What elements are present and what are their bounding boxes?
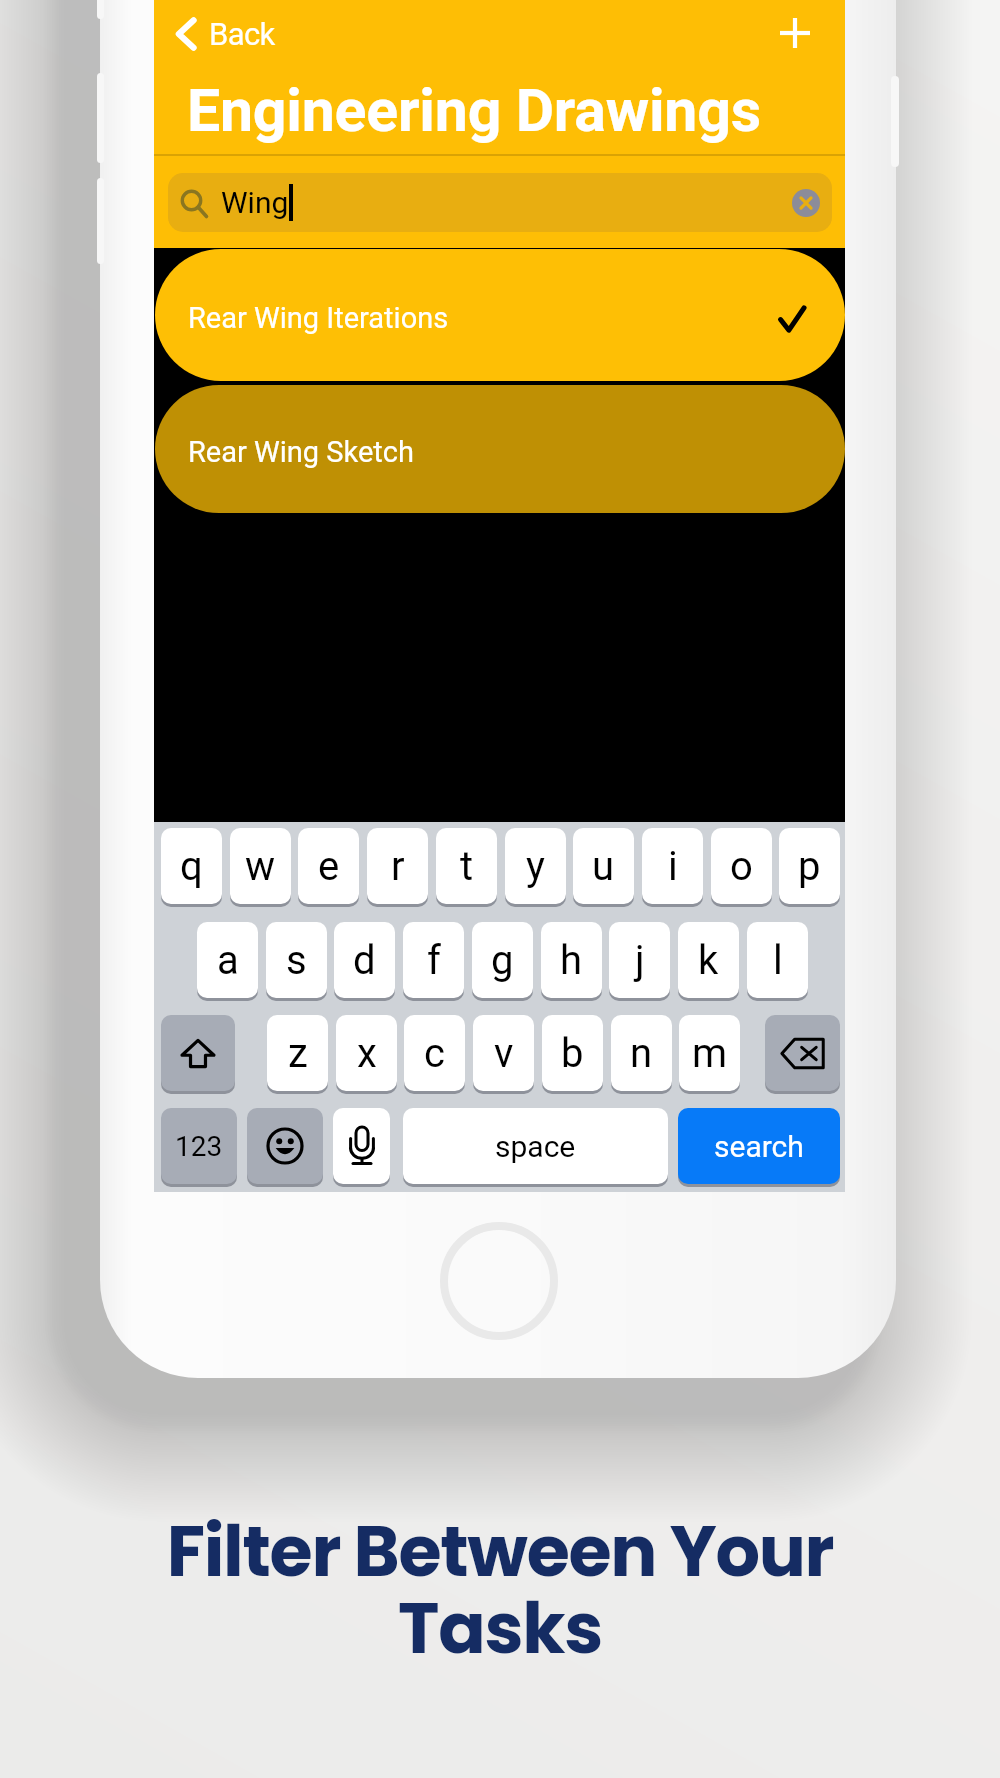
button[interactable]: Add (762, 0, 828, 66)
staticText: g (491, 937, 514, 984)
button[interactable]: m (679, 1015, 740, 1091)
staticText: space (495, 1129, 576, 1164)
button[interactable]: Wing (168, 173, 832, 232)
button[interactable]: x (336, 1015, 397, 1091)
staticText: Rear Wing Sketch (188, 435, 414, 469)
staticText: v (494, 1030, 514, 1077)
staticText: m (692, 1030, 728, 1077)
button[interactable]: n (611, 1015, 672, 1091)
staticText: Back (209, 16, 275, 52)
button[interactable]: space (403, 1108, 668, 1184)
button[interactable]: Emoji (247, 1108, 323, 1184)
staticText: b (561, 1030, 584, 1077)
staticText: r (391, 843, 405, 890)
button[interactable]: j (609, 922, 670, 998)
staticText: t (460, 843, 474, 890)
button[interactable]: q (161, 828, 222, 904)
button[interactable]: Backspace (765, 1015, 840, 1091)
button[interactable]: Rear Wing Sketch (155, 385, 845, 513)
button[interactable]: search (678, 1108, 840, 1184)
button[interactable]: f (403, 922, 464, 998)
button[interactable]: e (298, 828, 359, 904)
staticText: y (526, 843, 545, 890)
button[interactable]: w (230, 828, 291, 904)
staticText: Engineering Drawings (187, 76, 761, 145)
staticText: q (180, 843, 203, 890)
staticText: 123 (175, 1130, 223, 1163)
staticText: k (698, 937, 719, 984)
button[interactable]: r (367, 828, 428, 904)
button[interactable]: l (747, 922, 808, 998)
staticText: p (798, 843, 821, 890)
staticText: f (427, 937, 441, 984)
button[interactable]: o (711, 828, 772, 904)
button[interactable]: c (404, 1015, 465, 1091)
button[interactable]: t (436, 828, 497, 904)
staticText: Rear Wing Iterations (188, 301, 449, 335)
button[interactable]: Back (170, 8, 281, 60)
staticText: l (773, 937, 783, 984)
button[interactable]: h (541, 922, 602, 998)
staticText: h (560, 937, 583, 984)
staticText: Filter Between Your Tasks (150, 1502, 850, 1678)
staticText: Wing (221, 185, 289, 220)
staticText: d (353, 937, 376, 984)
button[interactable]: s (266, 922, 327, 998)
button[interactable]: p (779, 828, 840, 904)
staticText: i (668, 843, 678, 890)
staticText: e (318, 843, 340, 890)
staticText: u (592, 843, 615, 890)
button[interactable]: 123 (161, 1108, 237, 1184)
button[interactable]: Shift (161, 1015, 235, 1091)
button[interactable]: u (573, 828, 634, 904)
button[interactable]: Clear search (792, 189, 820, 217)
button[interactable]: z (267, 1015, 328, 1091)
staticText: c (424, 1030, 445, 1077)
staticText: o (730, 843, 753, 890)
button[interactable]: a (197, 922, 258, 998)
staticText: j (635, 937, 645, 984)
button[interactable]: g (472, 922, 533, 998)
staticText: a (217, 937, 239, 984)
staticText: search (714, 1129, 804, 1164)
button[interactable]: v (473, 1015, 534, 1091)
button[interactable]: Rear Wing Iterations (155, 249, 845, 381)
button[interactable]: Dictation (333, 1108, 390, 1184)
button[interactable]: d (334, 922, 395, 998)
button[interactable]: y (505, 828, 566, 904)
button[interactable]: b (542, 1015, 603, 1091)
staticText: w (245, 843, 276, 890)
staticText: x (357, 1030, 377, 1077)
button[interactable]: k (678, 922, 739, 998)
staticText: z (288, 1030, 308, 1077)
staticText: n (630, 1030, 653, 1077)
staticText: s (286, 937, 307, 984)
button[interactable]: i (642, 828, 703, 904)
